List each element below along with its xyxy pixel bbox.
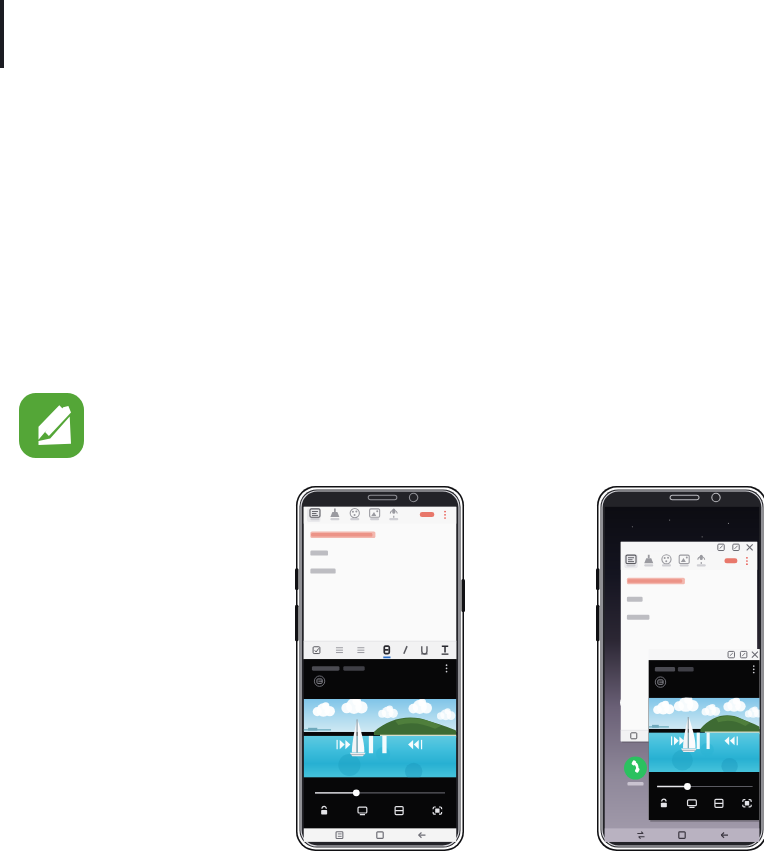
button[interactable]: Note app icon [19,393,84,458]
